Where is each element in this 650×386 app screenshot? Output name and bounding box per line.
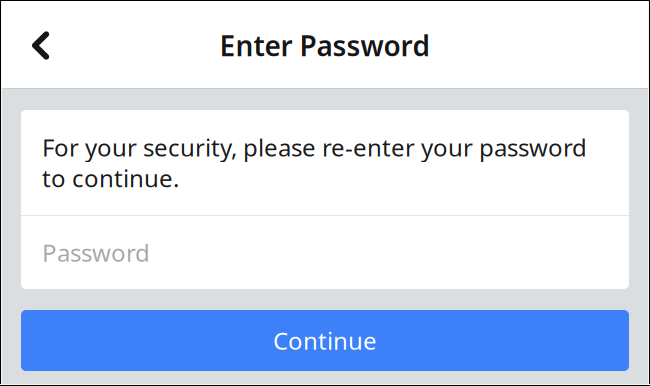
button[interactable]: Password <box>21 216 629 289</box>
staticText: Password <box>42 237 150 268</box>
staticText: Continue <box>273 325 377 356</box>
staticText: Enter Password <box>219 27 430 64</box>
staticText: For your security, please re-enter your … <box>42 131 587 194</box>
button[interactable]: Back <box>0 14 80 76</box>
button[interactable]: Continue <box>21 310 629 371</box>
